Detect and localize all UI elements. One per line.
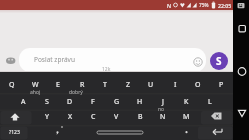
button[interactable]: K xyxy=(173,96,199,108)
staticText: J xyxy=(162,97,164,107)
button[interactable] xyxy=(233,60,249,82)
staticText: N xyxy=(160,112,166,122)
staticText: T xyxy=(103,80,107,90)
button[interactable]: O xyxy=(185,79,211,91)
button[interactable]: N xyxy=(150,111,176,123)
button[interactable]: E xyxy=(45,79,71,91)
staticText: F xyxy=(91,97,95,107)
button[interactable]: W xyxy=(22,79,48,91)
staticText: R xyxy=(80,80,85,90)
staticText: 22:05 xyxy=(218,2,232,9)
button[interactable]: I xyxy=(162,79,188,91)
staticText: 12k xyxy=(102,66,111,73)
staticText: U xyxy=(148,80,154,90)
button[interactable]: T xyxy=(92,79,118,91)
button[interactable] xyxy=(50,126,66,140)
staticText: E xyxy=(56,80,60,90)
button[interactable]: M xyxy=(173,111,199,123)
staticText: dobrý xyxy=(69,89,83,96)
button[interactable]: J xyxy=(150,96,176,108)
staticText: Y xyxy=(45,112,49,122)
button[interactable]: X xyxy=(57,111,83,123)
staticText: V xyxy=(114,112,119,122)
staticText: A xyxy=(21,97,26,107)
staticText: O xyxy=(195,80,201,90)
button[interactable] xyxy=(233,18,249,40)
button[interactable]: G xyxy=(104,96,130,108)
staticText: no xyxy=(158,106,165,113)
button[interactable]: A xyxy=(10,96,36,108)
staticText: S xyxy=(45,97,49,107)
button[interactable] xyxy=(5,56,17,66)
staticText: L xyxy=(208,97,212,107)
staticText: G xyxy=(114,97,120,107)
button[interactable] xyxy=(193,57,203,67)
button[interactable]: U xyxy=(138,79,164,91)
button[interactable]: Z xyxy=(115,79,141,91)
button[interactable] xyxy=(198,126,233,140)
button[interactable]: P xyxy=(208,79,234,91)
button[interactable]: Q xyxy=(0,79,25,91)
staticText: ?123 xyxy=(9,129,20,136)
button[interactable]: F xyxy=(80,96,106,108)
staticText: ahoj xyxy=(30,89,41,96)
staticText: D xyxy=(67,97,73,107)
staticText: B xyxy=(138,112,143,122)
button[interactable]: S xyxy=(210,52,228,70)
button[interactable]: B xyxy=(127,111,153,123)
button[interactable]: D xyxy=(57,96,83,108)
button[interactable] xyxy=(19,48,206,72)
button[interactable]: L xyxy=(197,96,223,108)
staticText: C xyxy=(91,112,96,122)
button[interactable]: H xyxy=(127,96,153,108)
staticText: H xyxy=(137,97,143,107)
staticText: I xyxy=(174,80,177,90)
staticText: P xyxy=(219,80,224,90)
staticText: Q xyxy=(9,80,15,90)
staticText: S xyxy=(216,54,222,68)
button[interactable] xyxy=(179,126,195,140)
button[interactable]: ?123 xyxy=(2,126,26,138)
staticText: X xyxy=(68,112,73,122)
button[interactable]: Y xyxy=(34,111,60,123)
button[interactable]: R xyxy=(69,79,95,91)
button[interactable] xyxy=(75,126,165,140)
button[interactable] xyxy=(233,103,249,125)
staticText: W xyxy=(32,80,39,90)
button[interactable]: S xyxy=(34,96,60,108)
staticText: N xyxy=(167,2,172,9)
staticText: K xyxy=(184,97,189,107)
staticText: 75% xyxy=(199,2,209,9)
button[interactable]: V xyxy=(103,111,129,123)
button[interactable]: C xyxy=(80,111,106,123)
staticText: Poslat zprávu xyxy=(34,55,75,64)
staticText: M xyxy=(183,112,190,122)
staticText: Z xyxy=(126,80,131,90)
